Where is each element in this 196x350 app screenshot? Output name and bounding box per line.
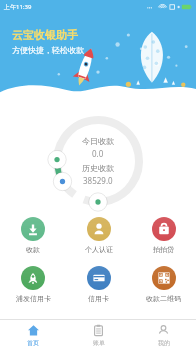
staticText: 账单 — [93, 339, 105, 347]
staticText: 信用卡 — [88, 294, 109, 303]
button[interactable]: 首页 — [0, 320, 66, 350]
button[interactable]: 浦发信用卡 — [0, 263, 66, 306]
button[interactable]: 账单 — [66, 320, 131, 350]
button[interactable]: 个人认证 — [66, 214, 131, 257]
staticText: 上午11:39 — [4, 3, 32, 11]
staticText: 0.0 — [92, 148, 104, 159]
staticText: 拍拍贷 — [153, 245, 174, 254]
staticText: 我的 — [158, 339, 170, 347]
staticText: 38529.0 — [83, 175, 113, 186]
button[interactable]: 收款 — [0, 214, 66, 257]
button[interactable]: 拍拍贷 — [131, 214, 196, 257]
staticText: 收款二维码 — [146, 294, 181, 303]
button[interactable]: 信用卡 — [66, 263, 131, 306]
staticText: 首页 — [27, 339, 39, 347]
staticText: 今日收款 — [82, 136, 114, 146]
button[interactable]: 收款二维码 — [131, 263, 196, 306]
staticText: 收款 — [26, 245, 40, 254]
staticText: 历史收款 — [82, 163, 114, 173]
staticText: 方便快捷，轻松收款 — [12, 45, 84, 55]
staticText: 云宝收银助手 — [12, 28, 78, 42]
button[interactable]: 我的 — [131, 320, 196, 350]
staticText: 浦发信用卡 — [16, 294, 51, 303]
staticText: 个人认证 — [85, 245, 113, 254]
